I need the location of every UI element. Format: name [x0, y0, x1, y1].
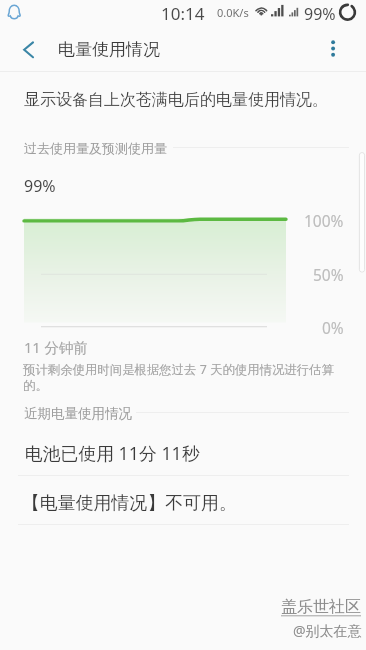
staticText: 100%	[304, 210, 344, 231]
button[interactable]: Back	[4, 26, 48, 70]
button[interactable]: 【电量使用情况】不可用。	[0, 476, 366, 524]
staticText: 99%	[304, 3, 336, 25]
staticText: 预计剩余使用时间是根据您过去 7 天的使用情况进行估算 的。	[23, 361, 334, 394]
staticText: 过去使用量及预测使用量	[24, 140, 167, 156]
staticText: 电量使用情况	[58, 39, 160, 60]
staticText: 50%	[313, 264, 344, 285]
staticText: 0.0K/s	[217, 5, 249, 20]
staticText: 近期电量使用情况	[24, 405, 132, 422]
button[interactable]: More options	[311, 26, 355, 70]
button[interactable]: 电池已使用 11分 11秒	[0, 427, 366, 475]
staticText: @别太在意	[293, 621, 362, 640]
staticText: 电池已使用 11分 11秒	[25, 441, 200, 465]
staticText: 99%	[24, 175, 56, 197]
staticText: 盖乐世社区	[281, 597, 361, 617]
staticText: 【电量使用情况】不可用。	[22, 492, 237, 515]
staticText: 显示设备自上次苍满电后的电量使用情况。	[24, 90, 328, 110]
staticText: 10:14	[161, 2, 205, 25]
staticText: 11 分钟前	[24, 337, 88, 357]
staticText: 0%	[322, 317, 344, 338]
